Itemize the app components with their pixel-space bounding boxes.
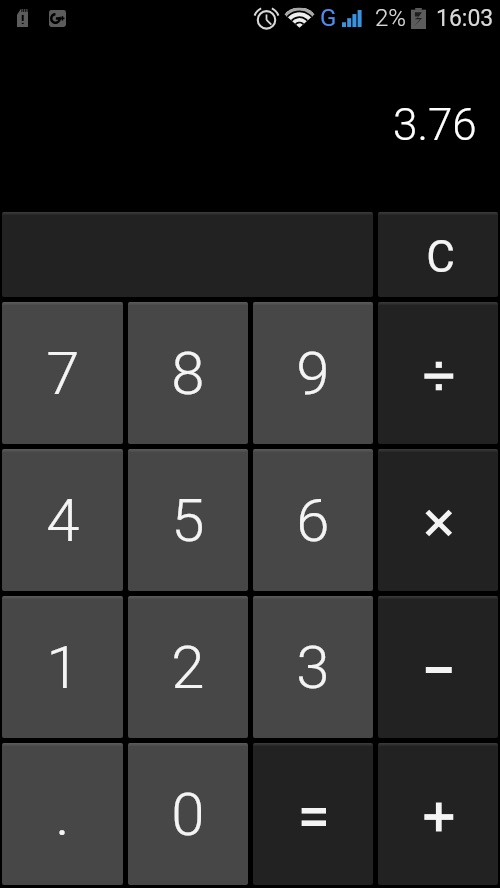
button[interactable]: Equals xyxy=(253,743,373,885)
staticText: 6 xyxy=(296,485,330,555)
staticText: 3.76 xyxy=(393,99,477,151)
staticText: . xyxy=(55,779,70,849)
button[interactable]: 9 xyxy=(253,302,373,444)
staticText: 0 xyxy=(171,779,205,849)
button[interactable]: Delete xyxy=(2,212,373,297)
staticText: G xyxy=(320,4,337,32)
button[interactable]: Multiply xyxy=(378,449,498,591)
button[interactable]: Minus xyxy=(378,596,498,738)
button[interactable]: 3 xyxy=(253,596,373,738)
staticText: 3 xyxy=(296,632,330,702)
button[interactable]: 8 xyxy=(128,302,248,444)
button[interactable]: 7 xyxy=(2,302,123,444)
staticText: 8 xyxy=(171,338,205,408)
staticText: C xyxy=(426,231,455,283)
staticText: 7 xyxy=(46,338,80,408)
button[interactable]: . xyxy=(2,743,123,885)
button[interactable]: 1 xyxy=(2,596,123,738)
staticText: 4 xyxy=(46,485,80,555)
button[interactable]: C xyxy=(378,212,498,297)
button[interactable]: Divide xyxy=(378,302,498,444)
staticText: 1 xyxy=(46,632,80,702)
staticText: 2% xyxy=(375,4,407,32)
staticText: 2 xyxy=(171,632,205,702)
button[interactable]: 2 xyxy=(128,596,248,738)
staticText: 16:03 xyxy=(436,5,494,32)
button[interactable]: 6 xyxy=(253,449,373,591)
button[interactable]: 5 xyxy=(128,449,248,591)
staticText: 5 xyxy=(171,485,205,555)
button[interactable]: 0 xyxy=(128,743,248,885)
button[interactable]: Plus xyxy=(378,743,498,885)
staticText: 9 xyxy=(296,338,330,408)
button[interactable]: 4 xyxy=(2,449,123,591)
